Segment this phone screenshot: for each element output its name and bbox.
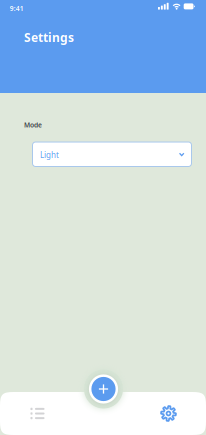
staticText: Mode (24, 120, 42, 129)
button[interactable]: Add (88, 374, 118, 404)
staticText: 9:41 (10, 4, 24, 13)
button[interactable]: Settings (131, 392, 206, 435)
staticText: Settings (24, 29, 74, 45)
staticText: Light (40, 150, 59, 160)
button[interactable]: Light (32, 142, 191, 166)
button[interactable]: List (0, 392, 75, 435)
